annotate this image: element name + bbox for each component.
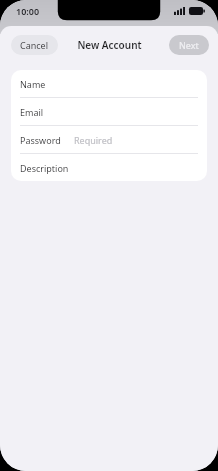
staticText: New Account	[77, 38, 142, 52]
other: Battery	[189, 7, 205, 15]
staticText: Cancel	[20, 39, 49, 51]
other: Cellular signal	[174, 7, 185, 15]
button[interactable]: Next	[169, 35, 209, 55]
staticText: Name	[20, 78, 46, 90]
button[interactable]: Email	[11, 98, 207, 125]
button[interactable]: Description	[11, 154, 207, 181]
staticText: Next	[179, 39, 199, 51]
staticText: 10:00	[16, 5, 40, 17]
staticText: Password	[20, 134, 61, 146]
staticText: Required	[74, 134, 113, 146]
staticText: Email	[20, 106, 44, 118]
button[interactable]: Cancel	[11, 35, 58, 55]
staticText: Description	[20, 162, 69, 174]
button[interactable]: Name	[11, 70, 207, 97]
button[interactable]: Password	[11, 126, 207, 153]
